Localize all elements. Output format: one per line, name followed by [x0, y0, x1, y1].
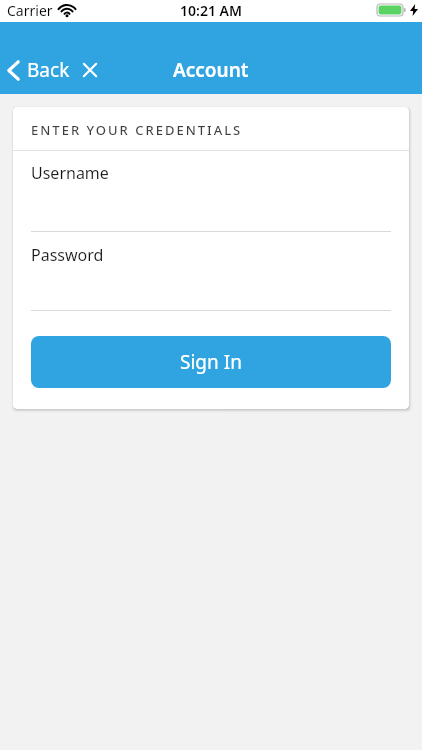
staticText: Carrier [7, 1, 53, 20]
staticText: Password [31, 244, 104, 266]
staticText: Account [173, 57, 249, 83]
staticText: Back [27, 57, 70, 83]
staticText: 10:21 AM [180, 1, 242, 20]
button[interactable]: Back [0, 57, 70, 83]
staticText: Username [31, 162, 109, 184]
staticText: ENTER YOUR CREDENTIALS [31, 121, 243, 139]
staticText: Sign In [180, 349, 242, 375]
button[interactable]: Sign In [31, 336, 391, 388]
button[interactable]: Password [31, 232, 391, 311]
button[interactable]: Username [31, 151, 391, 232]
button[interactable] [80, 60, 100, 80]
